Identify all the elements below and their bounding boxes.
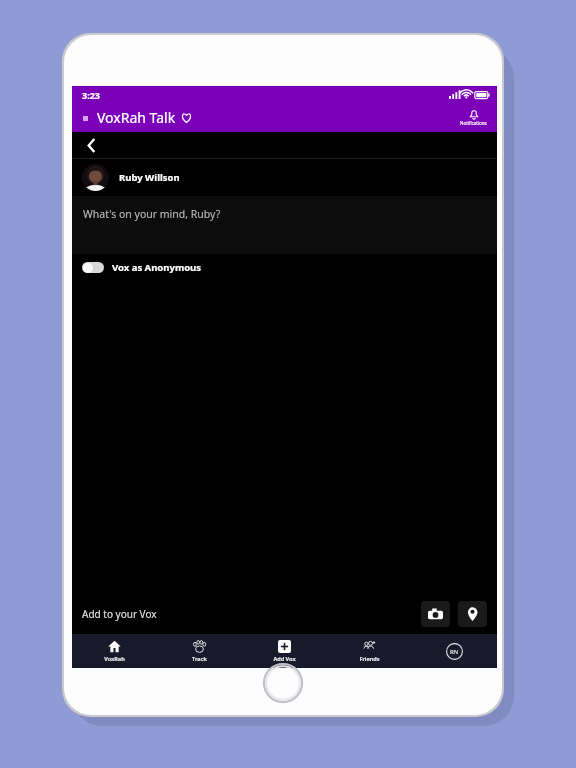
- staticText: What's on your mind, Ruby?: [83, 207, 221, 221]
- staticText: Ruby Willson: [119, 171, 180, 184]
- button[interactable]: Location: [458, 601, 487, 627]
- button[interactable]: VoxRah: [72, 634, 157, 668]
- staticText: VoxRah Talk: [97, 108, 176, 127]
- button[interactable]: Camera: [421, 601, 450, 627]
- button[interactable]: What's on your mind, Ruby?: [72, 196, 497, 254]
- button[interactable]: Profile RN: [412, 634, 497, 668]
- button[interactable]: Track: [157, 634, 242, 668]
- staticText: 3:23: [82, 89, 100, 101]
- button[interactable]: Friends: [327, 634, 412, 668]
- button[interactable]: Profile photo: [82, 164, 109, 191]
- staticText: Friends: [359, 655, 380, 662]
- button[interactable]: Menu: [77, 110, 93, 126]
- staticText: VoxRah: [104, 655, 125, 662]
- staticText: Vox as Anonymous: [112, 261, 202, 274]
- staticText: Add to your Vox: [82, 607, 157, 621]
- staticText: Add Vox: [273, 655, 296, 662]
- staticText: Notifications: [460, 120, 487, 126]
- button[interactable]: Add Vox: [242, 634, 327, 668]
- staticText: RN: [450, 648, 459, 656]
- button[interactable]: Notifications: [460, 109, 487, 126]
- button[interactable]: Vox as Anonymous: [72, 254, 497, 280]
- staticText: Track: [192, 655, 207, 662]
- button[interactable]: Back: [78, 132, 104, 158]
